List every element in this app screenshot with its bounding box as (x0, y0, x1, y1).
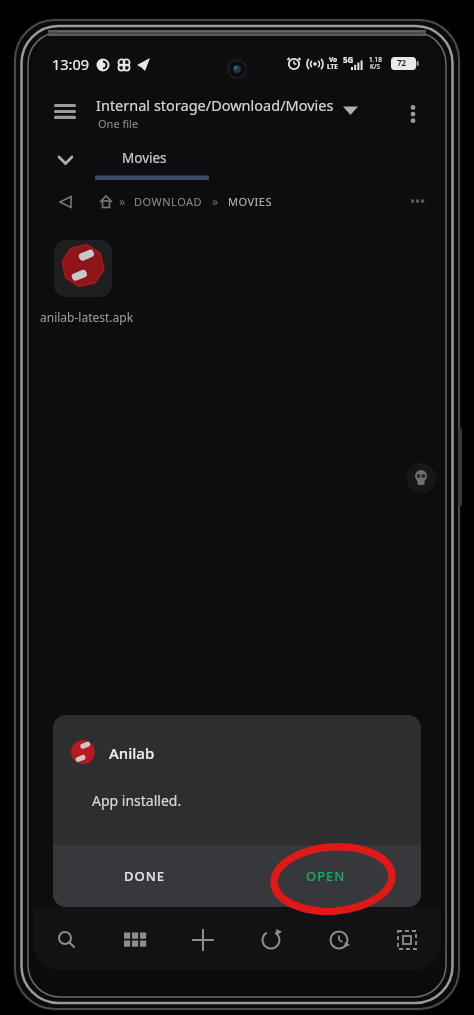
staticText: 72 (397, 57, 407, 68)
staticText: » (212, 193, 219, 209)
button[interactable] (385, 918, 429, 962)
staticText: LTE (327, 62, 338, 71)
staticText: Anilab (109, 743, 155, 763)
button[interactable]: Internal storage/Download/Movies (33, 38, 271, 58)
staticText: DONE (124, 867, 166, 885)
button[interactable] (249, 918, 293, 962)
staticText: One file (98, 116, 139, 131)
button[interactable] (54, 240, 112, 297)
staticText: OPEN (306, 867, 346, 885)
button[interactable] (317, 918, 361, 962)
button[interactable]: Movies (95, 144, 209, 180)
staticText: 13:09 (52, 54, 90, 74)
button[interactable] (181, 918, 225, 962)
staticText: Vo (329, 55, 338, 64)
button[interactable]: OPEN (289, 853, 365, 897)
button[interactable] (113, 918, 157, 962)
staticText: K/S (370, 62, 381, 71)
button[interactable]: MOVIES (33, 38, 77, 53)
staticText: 5G (343, 54, 354, 65)
staticText: anilab-latest.apk (40, 309, 134, 325)
staticText: App installed. (92, 791, 182, 810)
staticText: » (119, 193, 126, 209)
button[interactable]: DOWNLOAD (33, 38, 102, 53)
staticText: Movies (122, 149, 167, 167)
button[interactable]: DONE (107, 853, 183, 897)
button[interactable] (45, 918, 89, 962)
button[interactable] (401, 100, 425, 128)
button[interactable] (45, 98, 89, 128)
staticText: 1.18 (369, 55, 382, 64)
